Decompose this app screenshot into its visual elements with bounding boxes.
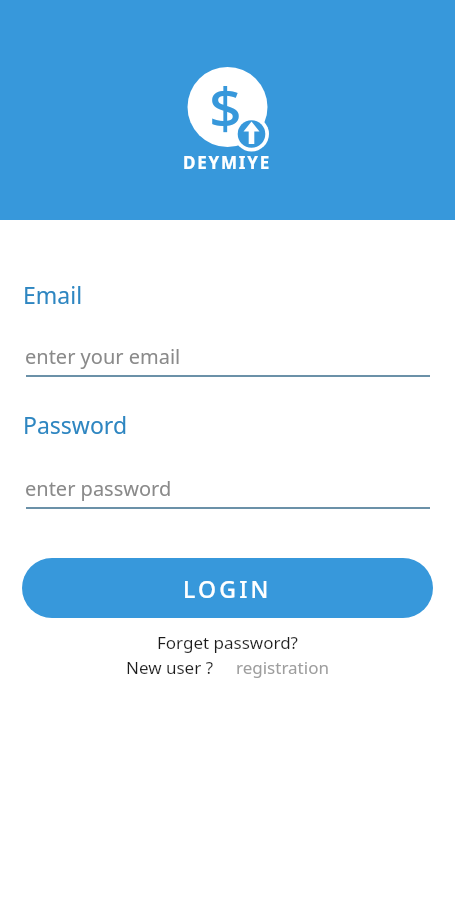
staticText: DEYMIYE (183, 151, 272, 174)
staticText: Password (23, 409, 128, 440)
button[interactable]: enter your email (0, 343, 455, 377)
button[interactable]: Forget password? (157, 631, 298, 654)
staticText: LOGIN (183, 573, 272, 604)
button[interactable]: registration (236, 656, 329, 679)
staticText: $ (209, 67, 242, 145)
staticText: enter your email (25, 343, 181, 370)
button[interactable]: enter password (0, 475, 455, 509)
button[interactable]: LOGIN (22, 558, 433, 618)
staticText: Email (23, 279, 83, 310)
staticText: New user ? (126, 656, 214, 679)
staticText: enter password (25, 475, 172, 502)
